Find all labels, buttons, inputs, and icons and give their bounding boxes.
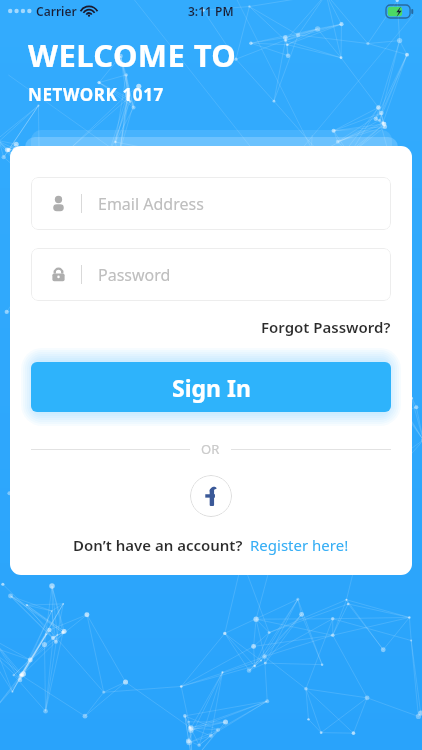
staticText: Carrier <box>36 3 77 19</box>
staticText: WELCOME TO <box>28 34 237 76</box>
staticText: OR <box>201 440 220 458</box>
staticText: Register here! <box>250 535 349 555</box>
staticText: Email Address <box>98 193 204 215</box>
staticText: 3:11 PM <box>188 3 234 19</box>
button[interactable]: Don’t have an account? <box>31 535 391 555</box>
staticText: NETWORK 1017 <box>28 83 164 106</box>
button[interactable]: Forgot Password? <box>31 317 391 337</box>
button[interactable]: Sign In <box>31 362 391 412</box>
button[interactable]: Sign in with Facebook <box>190 475 232 517</box>
button[interactable]: Password <box>31 248 391 301</box>
staticText: Don’t have an account? <box>73 535 243 555</box>
staticText: Password <box>98 264 171 286</box>
staticText: Sign In <box>172 372 251 403</box>
button[interactable]: Email Address <box>31 177 391 230</box>
staticText: Forgot Password? <box>261 317 391 337</box>
